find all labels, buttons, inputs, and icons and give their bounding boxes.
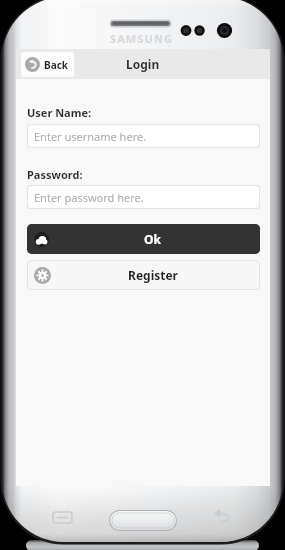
button[interactable]: Register xyxy=(28,261,259,289)
staticText: Password: xyxy=(27,167,83,182)
staticText: Enter username here. xyxy=(34,129,147,144)
staticText: Back xyxy=(44,58,68,72)
button[interactable]: Enter password here. xyxy=(28,186,259,208)
button[interactable]: Back xyxy=(21,52,74,77)
staticText: User Name: xyxy=(27,105,92,120)
staticText: Register xyxy=(128,267,178,283)
staticText: SAMSUNG xyxy=(110,31,174,44)
button[interactable]: Ok xyxy=(27,224,260,254)
staticText: Ok xyxy=(144,231,161,247)
staticText: Login xyxy=(126,56,160,72)
staticText: Enter password here. xyxy=(34,190,144,205)
button[interactable]: Enter username here. xyxy=(28,125,259,147)
